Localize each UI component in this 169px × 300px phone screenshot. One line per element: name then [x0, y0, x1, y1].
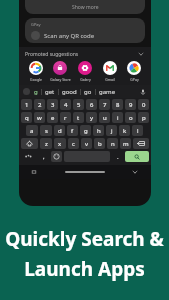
button[interactable]: GPay: [25, 18, 145, 43]
button[interactable]: Galery: [73, 61, 97, 82]
button[interactable]: m: [120, 138, 131, 149]
button[interactable]: i: [112, 112, 123, 123]
button[interactable]: 2: [34, 99, 45, 110]
button[interactable]: Show more: [25, 0, 145, 14]
staticText: n: [111, 140, 115, 148]
staticText: 8: [116, 101, 120, 109]
button[interactable]: x: [54, 138, 66, 149]
button[interactable]: v: [81, 138, 92, 149]
button[interactable]: ,: [38, 151, 49, 162]
staticText: .: [117, 153, 119, 161]
button[interactable]: Google: [24, 61, 48, 82]
button[interactable]: game: [99, 88, 116, 96]
button[interactable]: get: [45, 88, 55, 96]
button[interactable]: l: [132, 125, 143, 136]
staticText: x: [58, 140, 62, 148]
button[interactable]: 5: [73, 99, 84, 110]
button[interactable]: g: [80, 125, 91, 136]
staticText: h: [97, 127, 101, 135]
button[interactable]: 0: [138, 99, 149, 110]
staticText: z: [45, 140, 48, 148]
button[interactable]: Recents: [31, 169, 37, 175]
button[interactable]: 4: [60, 99, 71, 110]
button[interactable]: Voice input: [139, 88, 147, 96]
staticText: e: [51, 114, 55, 122]
button[interactable]: More: [23, 88, 30, 95]
button[interactable]: r: [60, 112, 71, 123]
staticText: get: [45, 88, 55, 96]
staticText: k: [123, 127, 127, 135]
staticText: u: [103, 114, 107, 122]
staticText: Google: [30, 77, 42, 82]
button[interactable]: 8: [112, 99, 123, 110]
button[interactable]: go: [84, 88, 92, 96]
staticText: 2: [38, 101, 42, 109]
button[interactable]: w: [34, 112, 45, 123]
staticText: g: [84, 127, 88, 135]
staticText: Launch Apps: [24, 256, 145, 282]
staticText: Gmail: [105, 77, 115, 82]
button[interactable]: d: [54, 125, 65, 136]
button[interactable]: o: [125, 112, 136, 123]
button[interactable]: k: [119, 125, 130, 136]
staticText: Quickly Search &: [5, 226, 164, 252]
staticText: 3: [51, 101, 55, 109]
button[interactable]: f: [67, 125, 78, 136]
staticText: game: [99, 88, 116, 96]
staticText: q: [25, 114, 29, 122]
button[interactable]: Collapse: [137, 50, 145, 58]
button[interactable]: c: [68, 138, 79, 149]
staticText: s: [45, 127, 48, 135]
button[interactable]: j: [106, 125, 117, 136]
button[interactable]: 9: [125, 99, 136, 110]
staticText: ,: [43, 153, 45, 161]
staticText: 0: [142, 101, 146, 109]
staticText: GPay: [31, 22, 41, 27]
staticText: j: [111, 127, 113, 135]
button[interactable]: t: [73, 112, 84, 123]
button[interactable]: y: [86, 112, 97, 123]
button[interactable]: a: [26, 125, 38, 136]
staticText: v: [85, 140, 89, 148]
button[interactable]: 1: [21, 99, 32, 110]
button[interactable]: Emoji: [51, 151, 62, 162]
button[interactable]: Hide keyboard: [131, 168, 139, 176]
button[interactable]: Symbols: [21, 151, 36, 162]
button[interactable]: 7: [99, 99, 110, 110]
staticText: d: [58, 127, 62, 135]
staticText: 9: [129, 101, 133, 109]
button[interactable]: u: [99, 112, 110, 123]
button[interactable]: GPay: [122, 61, 146, 82]
staticText: Promoted suggestions: [25, 51, 79, 58]
staticText: Galaxy Store: [50, 77, 71, 82]
staticText: 5: [77, 101, 81, 109]
staticText: 1: [25, 101, 29, 109]
button[interactable]: e: [47, 112, 58, 123]
staticText: Show more: [72, 4, 99, 11]
button[interactable]: Galaxy Store: [48, 61, 72, 82]
button[interactable]: q: [21, 112, 32, 123]
button[interactable]: .: [112, 151, 123, 162]
button[interactable]: z: [40, 138, 52, 149]
button[interactable]: 3: [47, 99, 58, 110]
staticText: m: [123, 140, 129, 148]
button[interactable]: good: [62, 88, 77, 96]
button[interactable]: b: [94, 138, 105, 149]
button[interactable]: Search: [125, 151, 149, 162]
staticText: i: [117, 114, 119, 122]
staticText: 7: [103, 101, 107, 109]
staticText: g: [34, 88, 38, 96]
button[interactable]: s: [40, 125, 52, 136]
button[interactable]: Backspace: [133, 138, 149, 149]
button[interactable]: Shift: [21, 138, 38, 149]
staticText: a: [30, 127, 34, 135]
staticText: Galery: [80, 77, 91, 82]
button[interactable]: p: [138, 112, 149, 123]
staticText: c: [72, 140, 75, 148]
button[interactable]: Gmail: [98, 61, 122, 82]
button[interactable]: n: [107, 138, 118, 149]
staticText: GPay: [130, 77, 139, 82]
button[interactable]: h: [93, 125, 104, 136]
button[interactable]: 6: [86, 99, 97, 110]
